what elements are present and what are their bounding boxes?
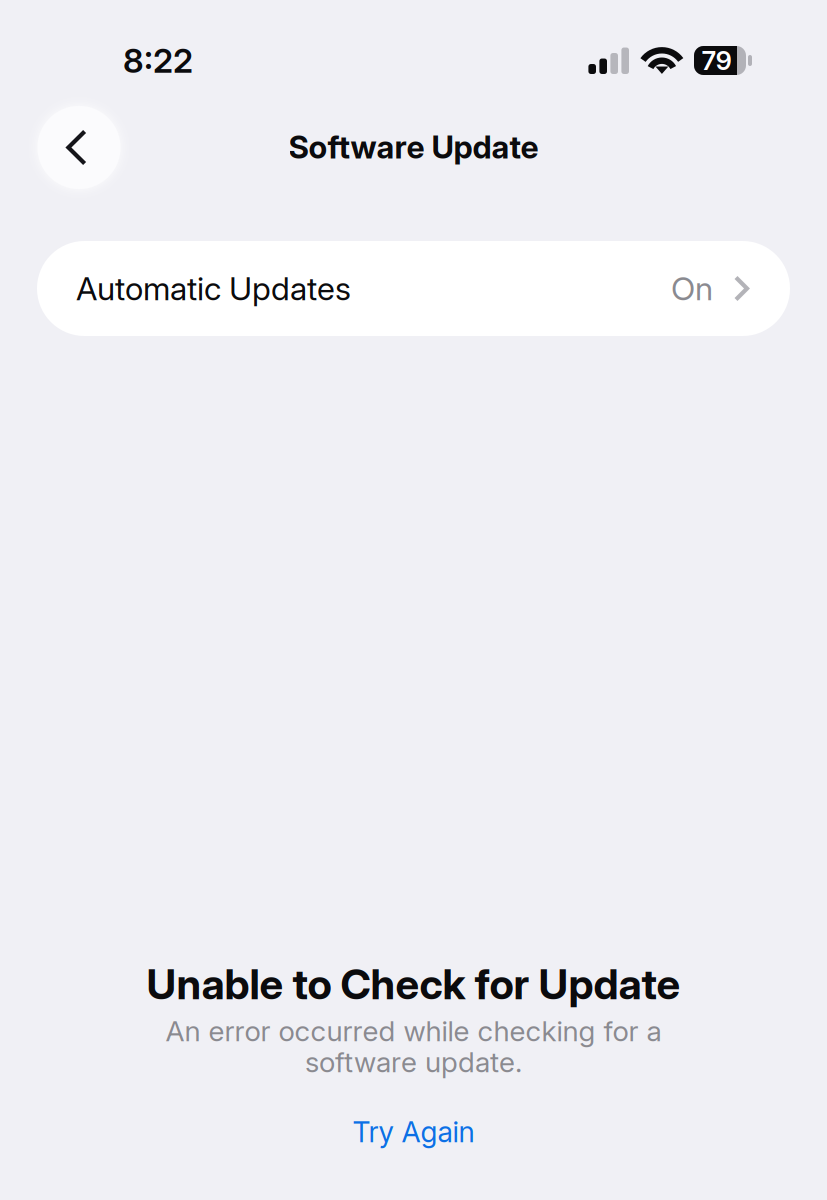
button[interactable]: Back — [37, 106, 120, 189]
button[interactable]: Try Again — [352, 1115, 474, 1149]
staticText: Software Update — [288, 128, 538, 166]
staticText: An error occurred while checking for a — [165, 1014, 661, 1048]
staticText: Unable to Check for Update — [146, 959, 680, 1009]
staticText: 79 — [701, 45, 731, 76]
staticText: On — [671, 269, 713, 308]
staticText: Try Again — [352, 1115, 474, 1149]
button[interactable]: Automatic Updates — [37, 241, 790, 336]
staticText: software update. — [305, 1045, 522, 1079]
staticText: 8:22 — [123, 40, 193, 81]
staticText: Automatic Updates — [76, 269, 351, 308]
